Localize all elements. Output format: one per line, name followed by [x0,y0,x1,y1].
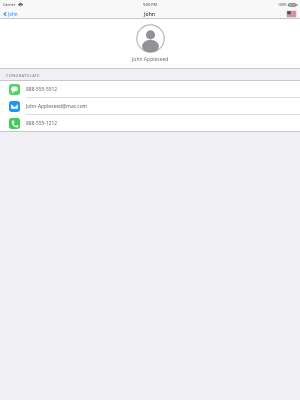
staticText: John [8,11,18,17]
other: Message 888-555-5512 [9,84,20,95]
staticText: 888-555-1212 [26,120,58,127]
button[interactable]: Language [284,10,300,18]
staticText: 9:00 PM [143,2,157,7]
staticText: CONGRATULATE [6,73,40,78]
staticText: 888-555-5512 [26,86,58,93]
staticText: 100% [278,2,287,7]
other: Call 888-555-1212 [9,118,20,129]
staticText: John [144,11,156,18]
button[interactable]: John [0,10,22,18]
button[interactable]: Call 888-555-1212 [0,115,300,131]
button[interactable]: Mail John-Appleseed@mac.com [0,98,300,114]
staticText: Carrier [3,2,16,7]
staticText: John-Appleseed@mac.com [26,103,88,110]
other: Mail John-Appleseed@mac.com [9,101,20,112]
button[interactable]: Message 888-555-5512 [0,81,300,97]
staticText: John Appleseed [132,56,169,63]
